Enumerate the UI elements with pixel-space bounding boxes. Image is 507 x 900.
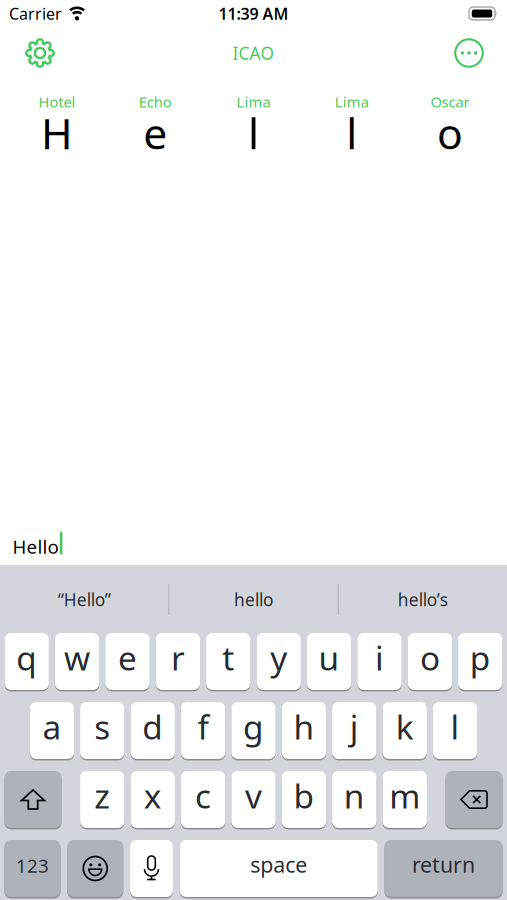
staticText: z xyxy=(94,773,110,818)
staticText: hello xyxy=(234,588,273,611)
staticText: 123 xyxy=(16,853,49,878)
button[interactable]: q xyxy=(4,633,49,690)
button[interactable]: v xyxy=(231,771,276,828)
staticText: Lima xyxy=(236,92,270,111)
staticText: Hello xyxy=(12,534,58,559)
button[interactable]: s xyxy=(80,702,124,759)
staticText: o xyxy=(437,104,463,161)
button[interactable]: “Hello” xyxy=(0,583,168,606)
button[interactable]: b xyxy=(282,771,326,828)
button[interactable]: x xyxy=(130,771,175,828)
staticText: t xyxy=(222,635,234,680)
button[interactable]: Dictate xyxy=(130,840,173,897)
staticText: i xyxy=(375,635,384,680)
button[interactable]: return xyxy=(384,840,502,897)
staticText: p xyxy=(470,635,491,680)
staticText: u xyxy=(319,635,340,680)
staticText: Lima xyxy=(335,92,369,111)
staticText: a xyxy=(42,704,61,749)
staticText: d xyxy=(142,704,163,749)
staticText: ICAO xyxy=(232,41,274,64)
button[interactable]: t xyxy=(206,633,250,690)
staticText: l xyxy=(451,704,460,749)
staticText: hello’s xyxy=(398,588,448,611)
button[interactable]: i xyxy=(357,633,402,690)
button[interactable]: r xyxy=(156,633,200,690)
staticText: x xyxy=(144,773,162,818)
button[interactable]: More xyxy=(454,38,484,68)
button[interactable]: o xyxy=(408,633,452,690)
staticText: f xyxy=(198,704,209,749)
staticText: s xyxy=(94,704,110,749)
button[interactable]: y xyxy=(256,633,301,690)
staticText: Echo xyxy=(139,92,172,111)
staticText: Hotel xyxy=(39,92,76,111)
button[interactable]: j xyxy=(332,702,376,759)
staticText: l xyxy=(346,104,357,161)
button[interactable]: m xyxy=(382,771,427,828)
staticText: b xyxy=(293,773,314,818)
button[interactable]: g xyxy=(231,702,276,759)
staticText: q xyxy=(16,635,37,680)
staticText: 11:39 AM xyxy=(218,3,288,24)
button[interactable]: n xyxy=(332,771,376,828)
button[interactable]: hello xyxy=(169,583,338,606)
button[interactable]: z xyxy=(80,771,124,828)
staticText: “Hello” xyxy=(58,588,111,611)
button[interactable]: space xyxy=(180,840,378,897)
button[interactable]: k xyxy=(382,702,427,759)
staticText: h xyxy=(293,704,314,749)
staticText: H xyxy=(41,104,73,161)
button[interactable]: c xyxy=(181,771,225,828)
button[interactable]: u xyxy=(307,633,351,690)
staticText: o xyxy=(420,635,440,680)
staticText: e xyxy=(143,104,167,161)
staticText: v xyxy=(245,773,262,818)
staticText: l xyxy=(248,104,259,161)
button[interactable]: 123 xyxy=(4,840,60,897)
staticText: n xyxy=(344,773,365,818)
button[interactable]: Delete xyxy=(445,771,502,828)
button[interactable]: e xyxy=(105,633,150,690)
staticText: Oscar xyxy=(430,92,469,111)
staticText: w xyxy=(64,635,90,680)
staticText: r xyxy=(171,635,185,680)
staticText: c xyxy=(195,773,211,818)
staticText: Carrier xyxy=(9,3,62,24)
staticText: g xyxy=(243,704,264,749)
staticText: j xyxy=(350,704,359,749)
button[interactable]: h xyxy=(282,702,326,759)
staticText: e xyxy=(118,635,137,680)
button[interactable]: Emoji xyxy=(67,840,123,897)
button[interactable]: a xyxy=(30,702,74,759)
button[interactable]: f xyxy=(181,702,225,759)
staticText: m xyxy=(389,773,420,818)
button[interactable]: w xyxy=(55,633,99,690)
button[interactable]: d xyxy=(130,702,175,759)
staticText: k xyxy=(396,704,414,749)
button[interactable]: l xyxy=(433,702,477,759)
staticText: return xyxy=(412,850,475,879)
button[interactable]: Settings xyxy=(25,38,55,68)
button[interactable]: p xyxy=(458,633,502,690)
staticText: y xyxy=(270,635,287,680)
button[interactable]: Shift xyxy=(4,771,61,828)
button[interactable]: hello’s xyxy=(339,583,507,606)
staticText: space xyxy=(250,850,307,879)
